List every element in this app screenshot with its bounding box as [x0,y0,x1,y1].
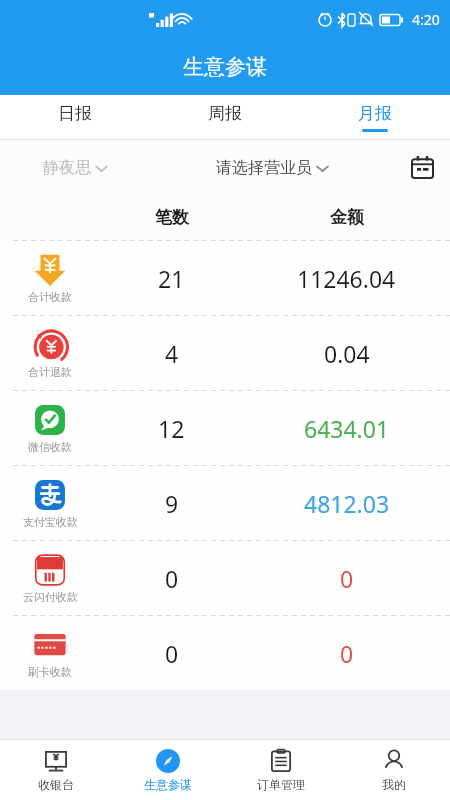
button[interactable]: 合计退款 [0,316,450,390]
button[interactable]: 月报 [300,95,450,140]
staticText: 支付宝收款 [23,515,78,529]
button[interactable]: 静夜思 [0,158,150,178]
button[interactable]: 我的 [337,740,450,800]
staticText: 刷卡收款 [28,665,72,679]
staticText: 9 [165,488,179,519]
button[interactable]: 支付宝收款 [0,466,450,540]
staticText: 合计收款 [28,290,72,304]
staticText: 0 [165,638,179,669]
button[interactable]: 云闪付收款 [0,541,450,615]
staticText: 请选择营业员 [216,158,312,178]
staticText: 静夜思 [43,158,91,178]
button[interactable]: 生意参谋 [112,740,224,800]
staticText: 6434.01 [304,413,390,444]
button[interactable]: 订单管理 [224,740,337,800]
staticText: 4 [165,338,179,369]
staticText: 合计退款 [28,365,72,379]
staticText: 4:20 [412,10,440,29]
staticText: 0 [340,563,354,594]
button[interactable]: 收银台 [0,740,112,800]
staticText: 我的 [382,777,406,792]
staticText: 笔数 [155,207,189,228]
staticText: 月报 [358,103,392,124]
staticText: 4812.03 [304,488,390,519]
staticText: 0 [165,563,179,594]
staticText: 订单管理 [257,777,305,792]
staticText: 21 [158,263,185,294]
button[interactable]: 合计收款 [0,241,450,315]
button[interactable]: 日报 [0,95,150,140]
staticText: 金额 [330,207,364,228]
staticText: 周报 [208,103,242,124]
button[interactable]: 周报 [150,95,300,140]
staticText: 收银台 [38,777,74,792]
staticText: 生意参谋 [144,777,192,792]
staticText: 11246.04 [297,263,396,294]
staticText: 微信收款 [28,440,72,454]
button[interactable]: 刷卡收款 [0,616,450,690]
staticText: 12 [158,413,185,444]
button[interactable]: 请选择营业员 [150,158,394,178]
staticText: 0.04 [324,338,370,369]
staticText: 云闪付收款 [23,590,78,604]
staticText: 生意参谋 [183,54,267,80]
staticText: 0 [340,638,354,669]
button[interactable]: 微信收款 [0,391,450,465]
staticText: 日报 [58,103,92,124]
button[interactable]: 选择日期 [394,140,450,195]
